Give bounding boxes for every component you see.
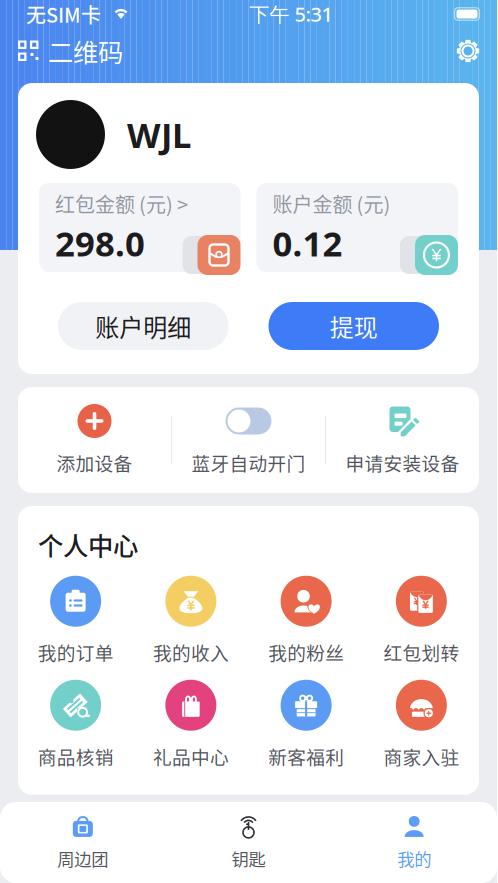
staticText: 我的粉丝: [268, 639, 344, 666]
staticText: 账户明细: [95, 309, 191, 343]
button[interactable]: 礼品中心: [133, 680, 248, 770]
button[interactable]: 申请安装设备: [326, 404, 479, 476]
staticText: 我的: [397, 846, 431, 871]
staticText: 红包划转: [383, 639, 459, 666]
button[interactable]: 我的收入: [133, 576, 248, 666]
button[interactable]: 红包划转: [364, 576, 479, 666]
button[interactable]: 蓝牙自动开门: [172, 404, 325, 476]
staticText: 礼品中心: [153, 743, 229, 770]
staticText: 商家入驻: [383, 743, 459, 770]
button[interactable]: 二维码: [0, 28, 137, 74]
staticText: 蓝牙自动开门: [191, 449, 305, 476]
staticText: 添加设备: [56, 449, 132, 476]
staticText: 二维码: [48, 33, 123, 69]
staticText: 红包金额 (元) >: [55, 189, 188, 218]
button[interactable]: 新客福利: [248, 680, 364, 770]
staticText: 个人中心: [38, 526, 138, 563]
staticText: [101, 0, 113, 29]
button[interactable]: 我的粉丝: [248, 576, 364, 666]
staticText: 0.12: [272, 220, 342, 266]
button[interactable]: 提现: [268, 302, 439, 350]
staticText: 周边团: [57, 846, 108, 871]
staticText: 提现: [330, 309, 378, 343]
staticText: 298.0: [55, 220, 145, 266]
staticText: 我的收入: [153, 639, 229, 666]
staticText: 新客福利: [268, 743, 344, 770]
staticText: WJL: [127, 111, 191, 157]
staticText: 我的订单: [38, 639, 114, 666]
button[interactable]: 我的: [331, 812, 497, 871]
staticText: 商品核销: [38, 743, 114, 770]
staticText: 钥匙: [231, 846, 265, 871]
staticText: 申请安装设备: [345, 449, 459, 476]
button[interactable]: Settings: [439, 28, 497, 74]
staticText: 下午 5:31: [249, 1, 332, 27]
staticText: 账户金额 (元): [272, 189, 390, 218]
button[interactable]: 添加设备: [18, 404, 171, 476]
button[interactable]: 钥匙: [166, 812, 331, 871]
button[interactable]: 商家入驻: [364, 680, 479, 770]
button[interactable]: 周边团: [0, 812, 166, 871]
button[interactable]: 账户明细: [58, 302, 228, 350]
button[interactable]: 商品核销: [18, 680, 133, 770]
staticText: 无SIM卡: [26, 0, 101, 28]
button[interactable]: 我的订单: [18, 576, 133, 666]
